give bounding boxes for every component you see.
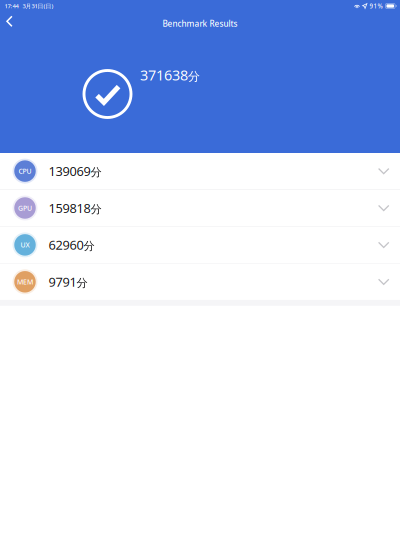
staticText: 159818 (48, 199, 90, 217)
staticText: 62960 (48, 236, 83, 254)
staticText: 分 (83, 239, 94, 253)
staticText: MEM (17, 277, 33, 286)
button[interactable]: MEM (0, 264, 400, 300)
staticText: 9791 (48, 273, 76, 290)
staticText: 371638 (140, 65, 188, 85)
staticText: 分 (76, 276, 87, 290)
staticText: 3月31日(日) (22, 2, 53, 10)
button[interactable]: Back (0, 12, 27, 32)
staticText: 分 (90, 165, 101, 179)
button[interactable]: UX (0, 227, 400, 263)
staticText: 分 (188, 69, 200, 84)
staticText: 17:44 (4, 2, 18, 10)
staticText: Benchmark Results (162, 18, 237, 29)
button[interactable]: GPU (0, 190, 400, 226)
staticText: CPU (18, 166, 31, 176)
staticText: 分 (90, 202, 101, 216)
staticText: 139069 (48, 162, 90, 180)
staticText: UX (20, 240, 29, 250)
button[interactable]: CPU (0, 153, 400, 189)
staticText: 91% (369, 2, 382, 10)
staticText: GPU (18, 203, 32, 213)
